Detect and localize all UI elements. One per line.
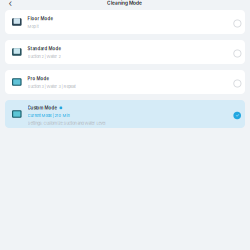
button[interactable]: Standard Mode [5, 40, 245, 64]
button[interactable]: Back [6, 0, 15, 6]
staticText: Floor Mode [28, 16, 54, 21]
staticText [236, 0, 242, 18]
staticText: Current Mode | 210 Min [28, 113, 70, 118]
staticText: Cleaning Mode [107, 0, 142, 6]
staticText: ‹ [8, 0, 12, 9]
staticText: Pro Mode [28, 76, 50, 81]
staticText: ✓ [235, 113, 239, 118]
staticText: Settings: Customize Suction and Water Le… [28, 121, 106, 126]
button[interactable]: Custom Mode [5, 100, 245, 128]
button[interactable]: Pro Mode [5, 70, 245, 94]
staticText: Suction 2 | Water 2 [28, 54, 61, 59]
staticText: Suction 3 | Water 3 | Repeat [28, 84, 76, 89]
staticText: Standard Mode [28, 46, 62, 51]
button[interactable]: Floor Mode [5, 10, 245, 34]
staticText: Mop it [28, 24, 39, 29]
staticText: Custom Mode [28, 105, 58, 110]
